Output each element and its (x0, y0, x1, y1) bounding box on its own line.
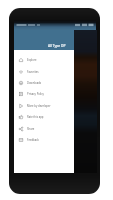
staticText: Downloads (27, 81, 42, 85)
button[interactable]: Downloads (14, 77, 96, 88)
button[interactable]: Privacy Policy (14, 88, 96, 99)
button[interactable]: Share (14, 123, 96, 134)
staticText: Feedback (27, 138, 39, 142)
staticText: Explore (27, 58, 37, 62)
button[interactable]: Explore (14, 54, 96, 65)
button[interactable]: More by developer (14, 100, 96, 111)
staticText: More by developer (27, 104, 51, 108)
staticText: All Type DP (48, 43, 66, 47)
staticText: Share (27, 127, 35, 131)
button[interactable]: Favorites (14, 66, 96, 77)
staticText: Favorites (27, 70, 39, 74)
button[interactable]: Feedback (14, 134, 96, 145)
button[interactable]: Rate this app (14, 111, 96, 122)
staticText: Privacy Policy (27, 92, 44, 96)
staticText: Rate this app (27, 115, 44, 119)
